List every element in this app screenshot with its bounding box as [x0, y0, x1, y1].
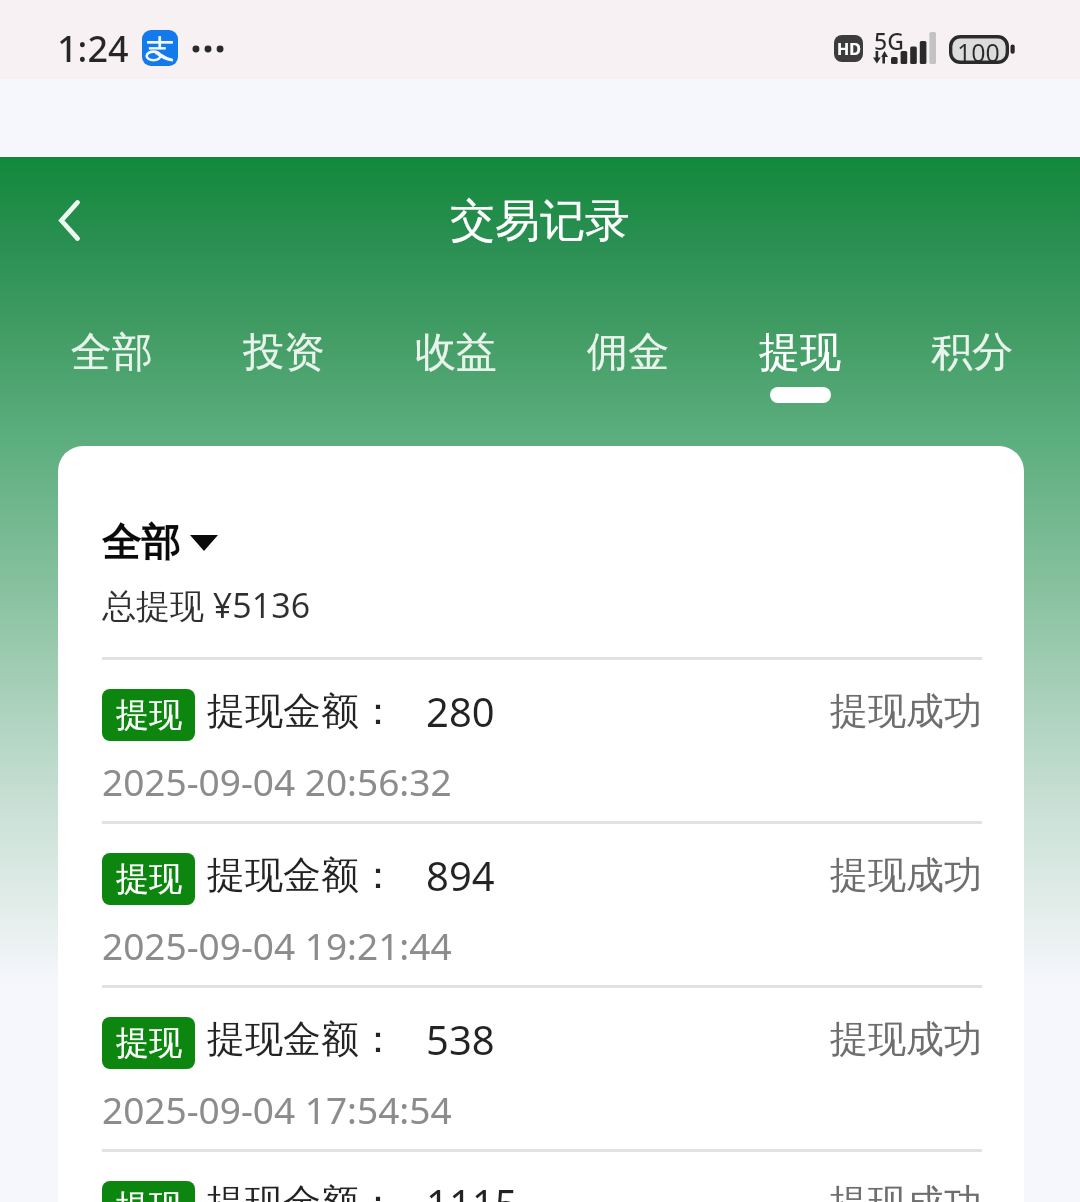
button[interactable]: 投资: [198, 327, 370, 403]
staticText: 投资: [243, 327, 325, 379]
staticText: 2025-09-04 17:54:54: [102, 1084, 452, 1134]
staticText: 提现: [116, 694, 182, 736]
button[interactable]: 全部: [26, 327, 198, 403]
button[interactable]: 提现: [102, 988, 982, 1149]
staticText: 2025-09-04 19:21:44: [102, 920, 452, 970]
button[interactable]: 积分: [886, 327, 1058, 403]
staticText: 提现成功: [830, 687, 982, 735]
staticText: 1:24: [57, 24, 129, 73]
staticText: 提现成功: [830, 851, 982, 899]
staticText: 提现金额：: [207, 1015, 397, 1063]
staticText: 全部: [102, 518, 180, 567]
staticText: 538: [426, 1012, 495, 1066]
staticText: 提现金额：: [207, 1179, 397, 1202]
button[interactable]: 提现: [102, 1152, 982, 1202]
staticText: 提现金额：: [207, 851, 397, 899]
button[interactable]: 佣金: [542, 327, 714, 403]
staticText: 提现: [116, 1186, 182, 1202]
staticText: 收益: [415, 327, 497, 379]
staticText: 提现: [116, 1022, 182, 1064]
staticText: 总提现 ¥5136: [102, 582, 311, 628]
button[interactable]: 收益: [370, 327, 542, 403]
staticText: 交易记录: [450, 193, 630, 250]
staticText: 佣金: [587, 327, 669, 379]
staticText: 提现成功: [830, 1179, 982, 1202]
staticText: 1115: [426, 1176, 518, 1202]
button[interactable]: 提现: [102, 824, 982, 985]
button[interactable]: Back: [34, 185, 104, 255]
staticText: 提现: [759, 327, 841, 379]
staticText: 100: [957, 35, 1000, 64]
staticText: 2025-09-04 20:56:32: [102, 756, 452, 806]
staticText: 积分: [931, 327, 1013, 379]
staticText: HD: [837, 38, 861, 60]
staticText: 提现成功: [830, 1015, 982, 1063]
button[interactable]: 提现: [714, 327, 886, 403]
staticText: 894: [426, 848, 495, 902]
staticText: 提现: [116, 858, 182, 900]
staticText: 全部: [71, 327, 153, 379]
button[interactable]: 全部 filter: [102, 518, 218, 567]
staticText: 5G: [874, 25, 904, 56]
staticText: 提现金额：: [207, 687, 397, 735]
button[interactable]: 提现: [102, 660, 982, 821]
staticText: 280: [426, 684, 495, 738]
